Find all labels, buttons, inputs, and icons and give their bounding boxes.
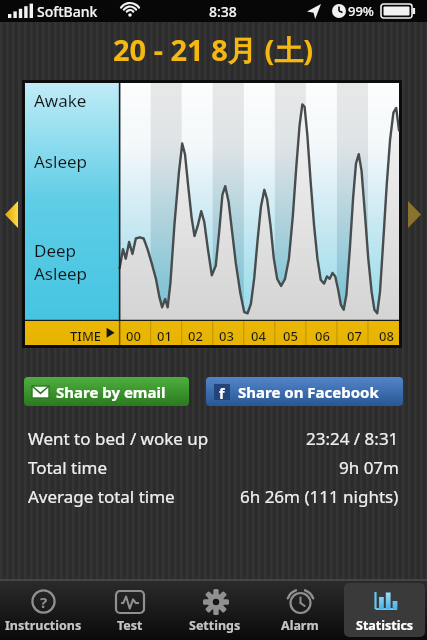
- staticText: Total time: [28, 456, 108, 479]
- staticText: Average total time: [28, 485, 175, 508]
- staticText: Deep: [34, 239, 77, 262]
- staticText: 99%: [348, 2, 374, 20]
- staticText: Went to bed / woke up: [28, 427, 209, 450]
- staticText: Asleep: [34, 262, 88, 285]
- staticText: 02: [188, 327, 203, 345]
- staticText: Statistics: [356, 617, 414, 634]
- button[interactable]: Alarm: [259, 583, 340, 637]
- staticText: f: [219, 384, 225, 400]
- staticText: Share on Facebook: [238, 382, 379, 402]
- button[interactable]: Statistics: [344, 583, 425, 637]
- staticText: Settings: [189, 617, 241, 634]
- button[interactable]: ?: [2, 583, 84, 637]
- staticText: Test: [117, 617, 143, 634]
- staticText: ?: [40, 592, 48, 612]
- staticText: 00: [126, 327, 141, 345]
- staticText: 04: [251, 327, 266, 345]
- staticText: Alarm: [281, 617, 319, 634]
- staticText: 08: [379, 327, 394, 345]
- staticText: 23:24 / 8:31: [306, 427, 399, 450]
- button[interactable]: Settings: [174, 583, 255, 637]
- staticText: Asleep: [34, 150, 88, 173]
- staticText: 06: [315, 327, 330, 345]
- staticText: 6h 26m (111 nights): [240, 485, 399, 508]
- staticText: 03: [219, 327, 234, 345]
- staticText: SoftBank: [37, 2, 98, 21]
- button[interactable]: Test: [88, 583, 170, 637]
- staticText: Awake: [34, 89, 87, 112]
- staticText: 20 - 21 8月 (土): [113, 30, 314, 70]
- staticText: 8:38: [209, 2, 237, 21]
- staticText: Instructions: [5, 617, 82, 634]
- staticText: Share by email: [56, 382, 166, 402]
- button[interactable]: Next night: [402, 78, 427, 350]
- button[interactable]: f: [206, 377, 403, 406]
- button[interactable]: Share by email: [24, 377, 189, 406]
- staticText: 05: [283, 327, 298, 345]
- staticText: 07: [347, 327, 362, 345]
- staticText: 9h 07m: [339, 456, 399, 479]
- staticText: 01: [157, 327, 172, 345]
- button[interactable]: Previous night: [0, 78, 22, 350]
- staticText: TIME: [70, 327, 102, 345]
